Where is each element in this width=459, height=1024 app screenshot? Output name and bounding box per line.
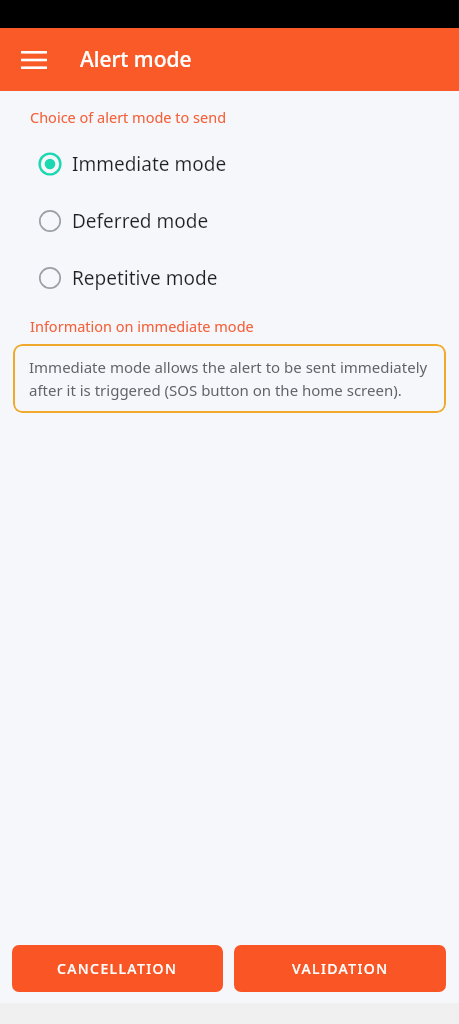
button[interactable]: Deferred mode [0,192,459,249]
button[interactable]: VALIDATION [234,945,446,992]
button[interactable]: Open navigation menu [10,36,58,84]
staticText: Alert mode [80,45,192,74]
staticText: Repetitive mode [72,265,218,291]
button[interactable]: Immediate mode [0,135,459,192]
button[interactable]: Repetitive mode [0,249,459,306]
staticText: VALIDATION [292,959,389,978]
staticText: Information on immediate mode [30,316,254,336]
staticText: CANCELLATION [57,959,178,978]
staticText: Immediate mode [72,151,227,177]
staticText: Choice of alert mode to send [30,107,227,127]
button[interactable]: CANCELLATION [12,945,223,992]
staticText: Deferred mode [72,208,209,234]
staticText: Immediate mode allows the alert to be se… [29,357,430,400]
